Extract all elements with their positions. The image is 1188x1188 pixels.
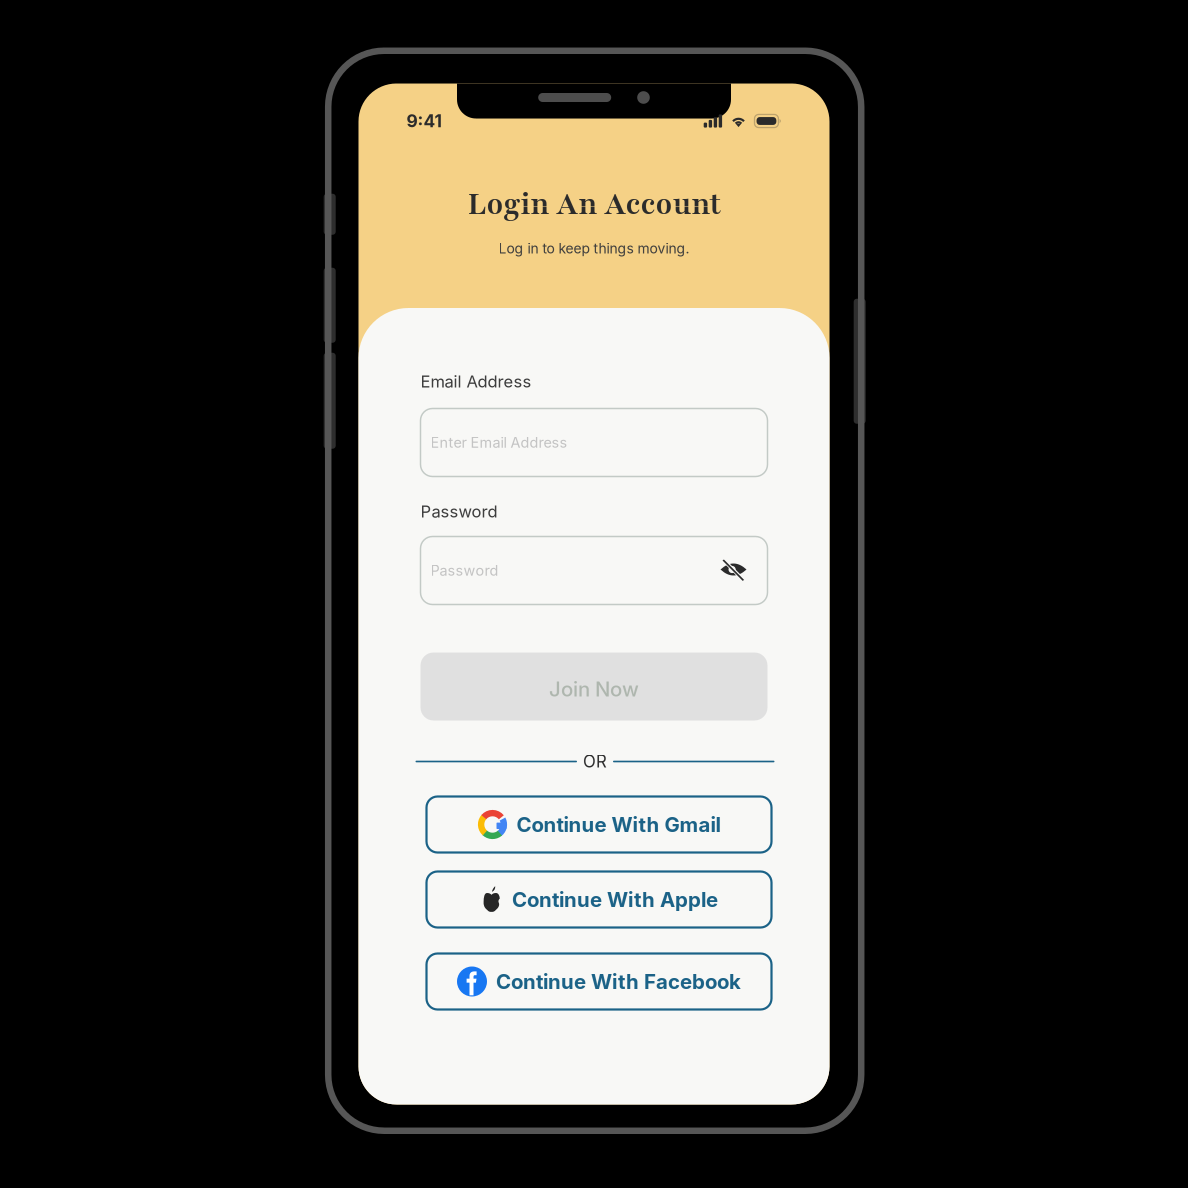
staticText: 9:41 [406, 110, 441, 131]
staticText: Continue With Apple [512, 887, 718, 912]
staticText: Login An Account [467, 184, 720, 225]
staticText: Email Address [420, 371, 531, 391]
button[interactable]: Show password [718, 559, 748, 581]
staticText: Continue With Facebook [496, 969, 741, 994]
staticText: Continue With Gmail [516, 812, 720, 837]
button[interactable]: Continue With Gmail [426, 796, 771, 852]
button[interactable]: Continue With Facebook [426, 953, 771, 1009]
staticText: Password [430, 562, 498, 579]
staticText: Password [420, 501, 497, 521]
staticText: Join Now [549, 677, 639, 701]
staticText: OR [583, 751, 607, 772]
staticText: Enter Email Address [430, 434, 567, 451]
staticText: Log in to keep things moving. [498, 240, 689, 257]
button[interactable]: Continue With Apple [426, 871, 771, 927]
button[interactable]: Join Now [420, 652, 767, 720]
